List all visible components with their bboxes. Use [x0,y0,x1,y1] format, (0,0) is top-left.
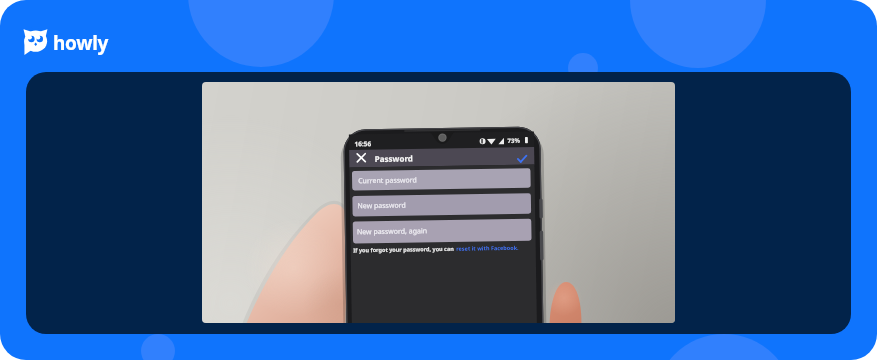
button[interactable]: Howly logo [23,29,109,56]
staticText: New password [357,201,407,211]
staticText: Password [375,152,414,164]
staticText: howly [53,30,109,56]
staticText: New password, again [357,226,428,237]
other: Howly logo [23,29,48,56]
staticText: Current password [358,175,417,186]
button[interactable]: 16:56 [202,82,675,323]
staticText: reset it with Facebook. [456,244,519,252]
staticText: If you forgot your password, you can [353,245,456,253]
staticText: 16:56 [354,139,371,148]
staticText: 73% [507,137,520,145]
